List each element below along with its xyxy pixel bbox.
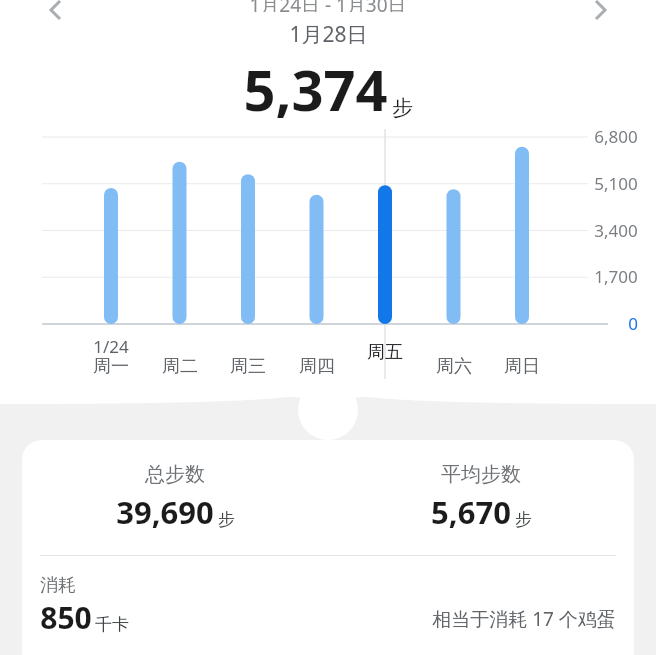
staticText: 周二 bbox=[162, 355, 198, 378]
button[interactable]: 平均步数 bbox=[328, 462, 634, 533]
button[interactable]: 总步数 bbox=[22, 440, 634, 655]
staticText: 1/24 bbox=[93, 335, 129, 358]
staticText: 3,400 bbox=[594, 219, 638, 242]
staticText: 总步数 bbox=[145, 462, 205, 487]
button[interactable]: Next week bbox=[584, 0, 618, 20]
staticText: 周四 bbox=[299, 355, 335, 378]
staticText: 1月24日 - 1月30日 bbox=[249, 0, 407, 12]
staticText: 5,374 bbox=[243, 51, 388, 127]
staticText: 0 bbox=[628, 312, 638, 335]
staticText: 1,700 bbox=[594, 265, 638, 288]
staticText: 6,800 bbox=[594, 125, 638, 148]
staticText: 步 bbox=[515, 509, 532, 530]
staticText: 1月28日 bbox=[289, 20, 368, 49]
staticText: 850 bbox=[40, 597, 92, 638]
staticText: 消耗 bbox=[40, 574, 76, 597]
staticText: 周六 bbox=[436, 355, 472, 378]
staticText: 相当于消耗 17 个鸡蛋 bbox=[432, 606, 616, 632]
button[interactable]: 周五 bbox=[357, 341, 413, 364]
button[interactable]: 周三 bbox=[220, 355, 276, 378]
button[interactable]: Previous week bbox=[38, 0, 72, 20]
staticText: 周三 bbox=[230, 355, 266, 378]
button[interactable]: 周日 bbox=[494, 355, 550, 378]
button[interactable]: 周六 bbox=[426, 355, 482, 378]
button[interactable]: 总步数 bbox=[22, 462, 328, 533]
staticText: 39,690 bbox=[116, 491, 214, 533]
button[interactable]: 1月24日 - 1月30日 bbox=[249, 0, 407, 12]
staticText: 周五 bbox=[367, 341, 403, 364]
staticText: 步 bbox=[392, 95, 413, 121]
staticText: 千卡 bbox=[95, 614, 129, 635]
staticText: 5,100 bbox=[594, 172, 638, 195]
staticText: 周一 bbox=[93, 355, 129, 378]
staticText: 步 bbox=[218, 509, 235, 530]
button[interactable]: 周四 bbox=[289, 355, 345, 378]
staticText: 周日 bbox=[504, 355, 540, 378]
staticText: 5,670 bbox=[431, 491, 511, 533]
button[interactable]: 周二 bbox=[152, 355, 208, 378]
button[interactable]: 周一 bbox=[83, 355, 139, 378]
staticText: 平均步数 bbox=[441, 462, 521, 487]
